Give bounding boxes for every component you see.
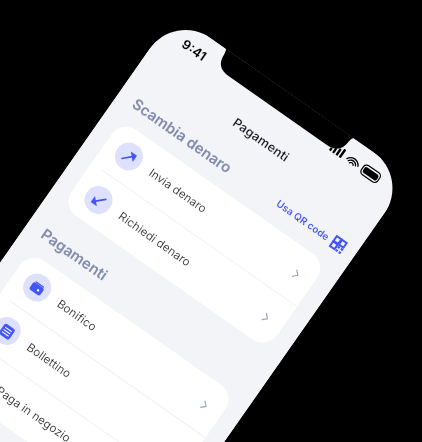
- staticText: Paga in negozio: [0, 384, 74, 442]
- staticText: Invia denaro: [146, 166, 210, 216]
- staticText: Richiedi denaro: [116, 209, 193, 269]
- button[interactable]: Bonifico: [0, 251, 235, 437]
- other: Usa QR code: [328, 235, 348, 254]
- button[interactable]: Invia denaro: [92, 120, 327, 306]
- staticText: Scambia denaro: [129, 94, 236, 177]
- button[interactable]: Richiedi denaro: [61, 163, 297, 350]
- staticText: Bonifico: [54, 297, 99, 334]
- button[interactable]: Bollettino: [0, 294, 205, 442]
- staticText: Pagamenti: [230, 115, 293, 165]
- staticText: Bollettino: [24, 340, 74, 381]
- button[interactable]: Usa QR code: [274, 196, 348, 254]
- staticText: Usa QR code: [274, 197, 332, 243]
- staticText: Pagamenti: [38, 225, 111, 283]
- staticText: 9:41: [179, 35, 210, 64]
- button[interactable]: Paga in negozio: [0, 338, 175, 442]
